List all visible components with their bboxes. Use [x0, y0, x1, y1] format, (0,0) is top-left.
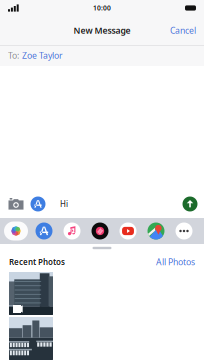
button[interactable]: Photo taken today [9, 272, 53, 315]
staticText: Recent Photos [9, 257, 65, 267]
staticText: Cancel [170, 25, 196, 36]
button[interactable]: Cancel [162, 16, 204, 45]
staticText: To: [8, 50, 19, 61]
button[interactable]: Fitness [86, 218, 114, 244]
button[interactable]: App Store [27, 191, 49, 217]
button[interactable]: Maps [142, 218, 170, 244]
button[interactable]: All Photos [156, 256, 195, 268]
staticText: Zoe Taylor [22, 50, 63, 61]
staticText: All Photos [156, 256, 195, 268]
button[interactable]: Send [180, 191, 200, 217]
button[interactable]: App Store [30, 218, 58, 244]
button[interactable]: Photo taken yesterday [9, 317, 53, 360]
staticText: 10:00 [93, 3, 111, 13]
button[interactable]: Photos [2, 218, 30, 244]
staticText: New Message [73, 25, 130, 36]
button[interactable]: Music [58, 218, 86, 244]
button[interactable]: More [170, 218, 198, 244]
button[interactable]: Camera [5, 191, 27, 217]
staticText: Hi [60, 199, 68, 209]
button[interactable]: YouTube [114, 218, 142, 244]
